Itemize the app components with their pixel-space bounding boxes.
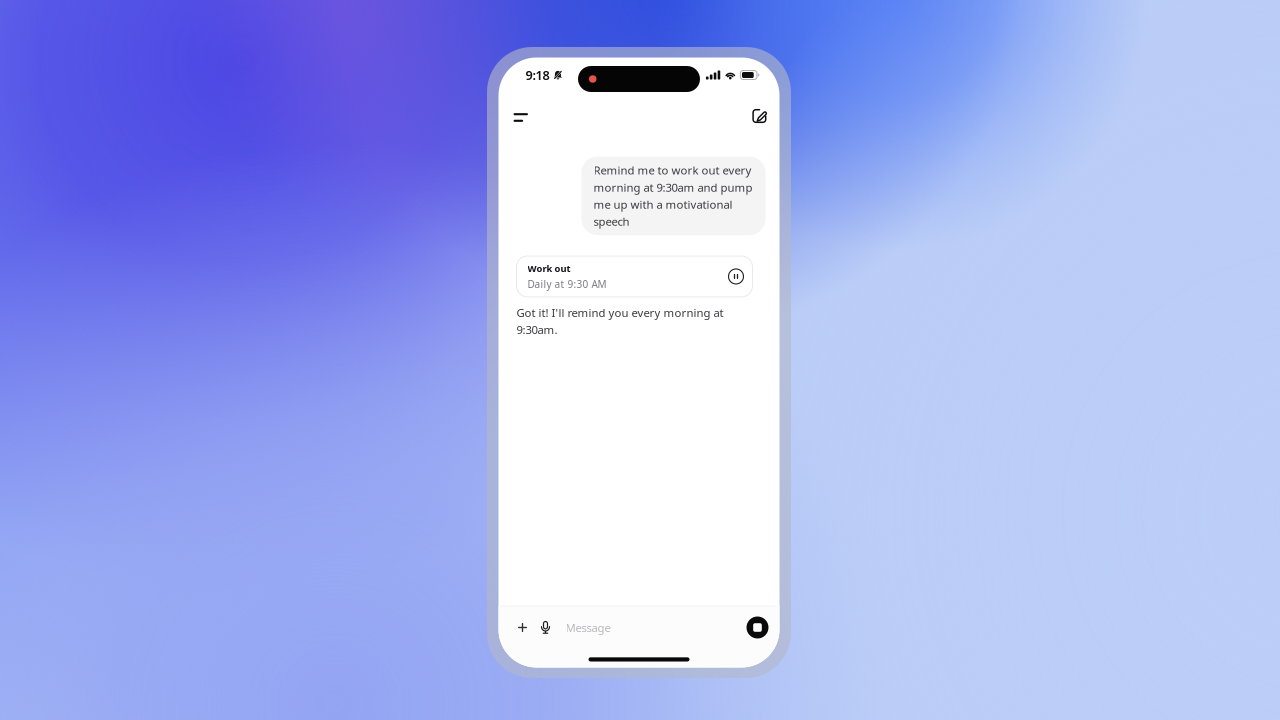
button[interactable]: Work out (516, 256, 752, 297)
button[interactable]: Show sidebar (511, 94, 536, 129)
button[interactable]: New chat (744, 93, 769, 129)
staticText: Daily at 9:30 AM (527, 277, 606, 291)
staticText: Remind me to work out every morning at 9… (593, 162, 752, 229)
staticText: Message (565, 620, 610, 635)
button[interactable]: Dictate (533, 614, 557, 640)
staticText: Got it! I'll remind you every morning at… (516, 305, 723, 337)
button[interactable]: Attach (511, 614, 533, 640)
button[interactable]: Stop (746, 616, 768, 638)
staticText: 9:18 (525, 66, 549, 84)
staticText: Work out (527, 262, 570, 275)
